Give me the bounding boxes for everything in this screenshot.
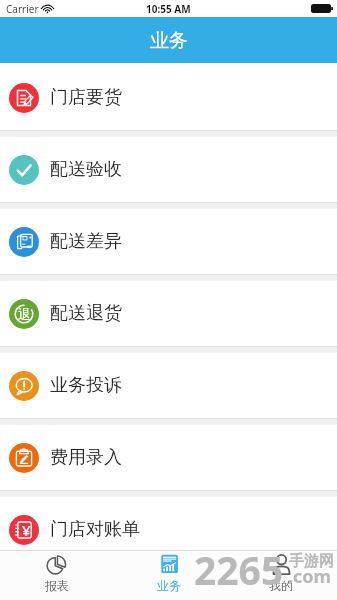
staticText: 业务 [157, 578, 181, 593]
button[interactable]: 费用录入 [0, 425, 337, 490]
button[interactable]: 退 [0, 281, 337, 346]
button[interactable]: 配送验收 [0, 137, 337, 202]
staticText: ¥ [22, 520, 31, 540]
button[interactable]: 我的 [225, 551, 337, 600]
staticText: 门店对账单 [50, 518, 140, 541]
staticText: 门店要货 [50, 86, 122, 109]
staticText: 2265 [194, 543, 284, 596]
staticText: Carrier [6, 2, 39, 16]
button[interactable]: 业务 [113, 551, 225, 600]
button[interactable]: ¥ [0, 497, 337, 550]
staticText: 手游网 [289, 552, 334, 571]
button[interactable]: 报表 [0, 551, 113, 600]
button[interactable]: 配送差异 [0, 209, 337, 274]
button[interactable]: 业务投诉 [0, 353, 337, 418]
staticText: 业务投诉 [50, 374, 122, 397]
staticText: 退 [18, 306, 31, 322]
staticText: 配送退货 [50, 302, 122, 325]
staticText: 报表 [45, 578, 69, 593]
staticText: 10:55 AM [146, 2, 191, 16]
button[interactable]: 门店要货 [0, 65, 337, 130]
staticText: .com [288, 564, 332, 589]
staticText: 配送差异 [50, 230, 122, 253]
staticText: 配送验收 [50, 158, 122, 181]
staticText: 费用录入 [50, 446, 122, 469]
staticText: 我的 [269, 578, 293, 593]
staticText: 业务 [150, 29, 188, 53]
